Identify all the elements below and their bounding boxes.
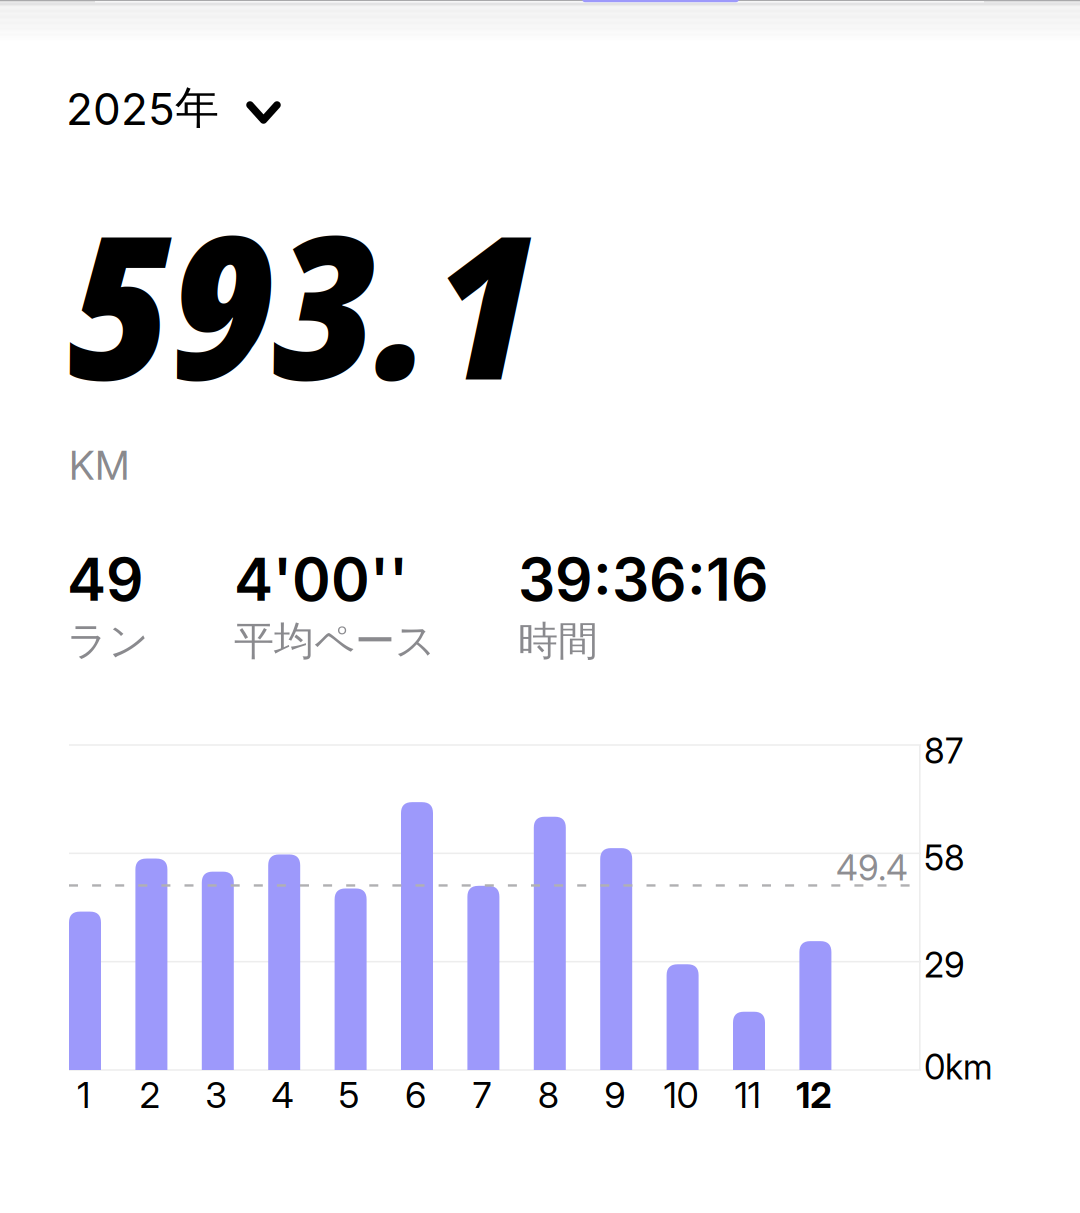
staticText: 平均ペース bbox=[234, 616, 436, 666]
button[interactable]: 2025年 bbox=[64, 76, 283, 140]
staticText: 4'00'' bbox=[234, 544, 408, 615]
staticText: 87 bbox=[924, 730, 963, 772]
staticText: 29 bbox=[924, 944, 965, 986]
staticText: 4 bbox=[271, 1073, 294, 1117]
staticText: 7 bbox=[472, 1073, 491, 1117]
staticText: 5 bbox=[339, 1073, 360, 1117]
staticText: 49.4 bbox=[836, 847, 908, 889]
staticText: 10 bbox=[664, 1073, 699, 1117]
staticText: 58 bbox=[924, 837, 965, 879]
staticText: 2025年 bbox=[66, 80, 219, 136]
staticText: 6 bbox=[405, 1073, 426, 1117]
staticText: 9 bbox=[604, 1073, 625, 1117]
staticText: 11 bbox=[734, 1073, 760, 1117]
staticText: 12 bbox=[796, 1073, 832, 1117]
staticText: 0km bbox=[924, 1046, 993, 1088]
staticText: ラン bbox=[67, 616, 149, 666]
staticText: 1 bbox=[77, 1073, 90, 1117]
staticText: 593.1 bbox=[67, 167, 535, 438]
staticText: 時間 bbox=[518, 616, 598, 666]
staticText: 3 bbox=[205, 1073, 227, 1117]
staticText: 2 bbox=[139, 1073, 160, 1117]
staticText: 39:36:16 bbox=[518, 544, 769, 615]
staticText: 8 bbox=[538, 1073, 559, 1117]
staticText: 49 bbox=[67, 544, 144, 615]
staticText: KM bbox=[69, 441, 129, 489]
